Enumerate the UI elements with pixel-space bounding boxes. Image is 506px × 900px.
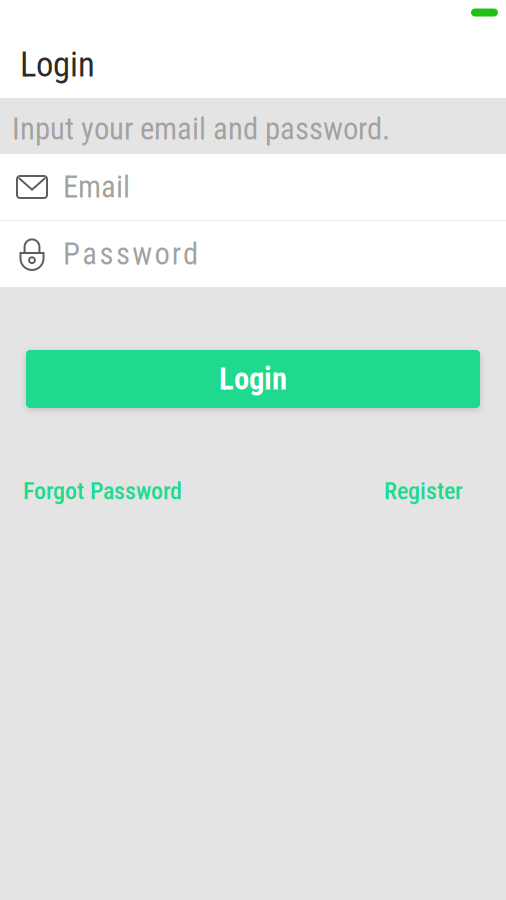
button[interactable]: Forgot Password [23,469,182,513]
staticText: Register [384,477,463,505]
staticText: Input your email and password. [12,111,390,147]
staticText: Login [219,361,287,397]
button[interactable]: Email [0,154,506,220]
staticText: Email [63,169,130,205]
staticText: Forgot Password [23,477,182,505]
staticText: Login [20,44,95,85]
button[interactable]: Register [384,469,463,513]
staticText: Password [63,236,198,272]
button[interactable]: Login [26,350,480,408]
button[interactable]: Password [0,221,506,287]
